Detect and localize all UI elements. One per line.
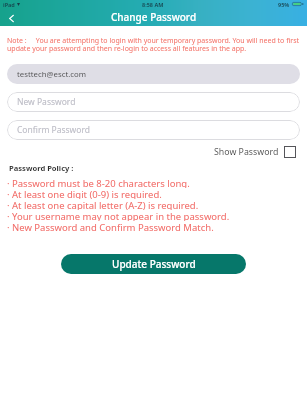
staticText: · Your username may not appear in the pa… <box>7 210 230 221</box>
staticText: · At least one capital letter (A-Z) is r… <box>7 199 199 210</box>
button[interactable]: New Password <box>7 92 300 112</box>
button[interactable]: testtech@esct.com <box>7 64 300 84</box>
staticText: Show Password <box>214 146 279 158</box>
button[interactable]: Confirm Password <box>7 120 300 140</box>
button[interactable]: Show Password <box>214 146 296 158</box>
staticText: Confirm Password <box>17 124 90 136</box>
button[interactable]: Update Password <box>61 254 246 274</box>
staticText: Note : You are attempting to login with … <box>7 36 301 53</box>
staticText: Change Password <box>111 10 197 24</box>
staticText: New Password <box>17 96 76 108</box>
staticText: iPad <box>3 1 15 8</box>
staticText: Update Password <box>112 257 196 271</box>
button[interactable]: Back <box>3 10 19 26</box>
staticText: Password Policy : <box>9 163 74 173</box>
staticText: · At least one digit (0-9) is required. <box>7 188 162 199</box>
staticText: · New Password and Confirm Password Matc… <box>7 221 214 232</box>
staticText: testtech@esct.com <box>17 69 87 80</box>
staticText: 95% <box>278 1 290 8</box>
staticText: · Password must be 8-20 characters long. <box>7 177 190 188</box>
staticText: 8:58 AM <box>142 1 164 8</box>
